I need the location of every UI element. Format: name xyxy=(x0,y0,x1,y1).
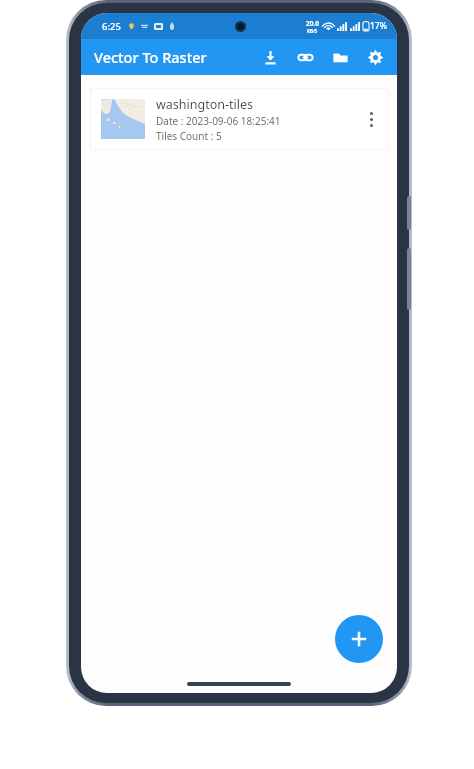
staticText: washington-tiles xyxy=(156,96,254,113)
staticText: 6:25 xyxy=(102,20,121,33)
button[interactable]: Open folder xyxy=(327,44,353,70)
staticText: Date : 2023-09-06 18:25:41 xyxy=(156,114,281,128)
staticText: KB/S xyxy=(307,28,318,34)
button[interactable]: Settings xyxy=(362,44,388,70)
staticText: 20.0 xyxy=(306,19,319,28)
staticText: Tiles Count : 5 xyxy=(156,129,222,143)
staticText: 17% xyxy=(370,20,387,32)
staticText: Vector To Raster xyxy=(94,47,207,67)
button[interactable]: Copy link xyxy=(292,44,318,70)
button[interactable]: washington-tiles xyxy=(90,88,388,150)
button[interactable]: Download xyxy=(257,44,283,70)
button[interactable]: Add new tiles xyxy=(335,615,383,663)
button[interactable]: More options xyxy=(360,101,382,137)
